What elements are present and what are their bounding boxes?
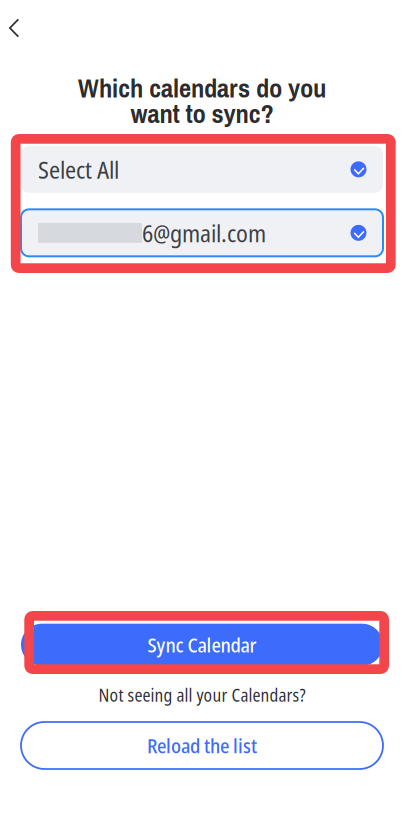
- staticText: Sync Calendar: [147, 631, 256, 658]
- staticText: Which calendars do you: [78, 70, 326, 106]
- staticText: Reload the list: [147, 732, 257, 759]
- button[interactable]: Reload the list: [21, 722, 383, 769]
- button[interactable]: 6@gmail.com: [21, 209, 383, 256]
- staticText: want to sync?: [130, 95, 273, 131]
- staticText: Not seeing all your Calendars?: [98, 683, 305, 707]
- button[interactable]: Sync Calendar: [21, 624, 383, 666]
- staticText: 6@gmail.com: [142, 216, 266, 249]
- button[interactable]: Back: [0, 0, 39, 51]
- button[interactable]: Select All: [21, 146, 383, 193]
- staticText: Select All: [38, 153, 119, 186]
